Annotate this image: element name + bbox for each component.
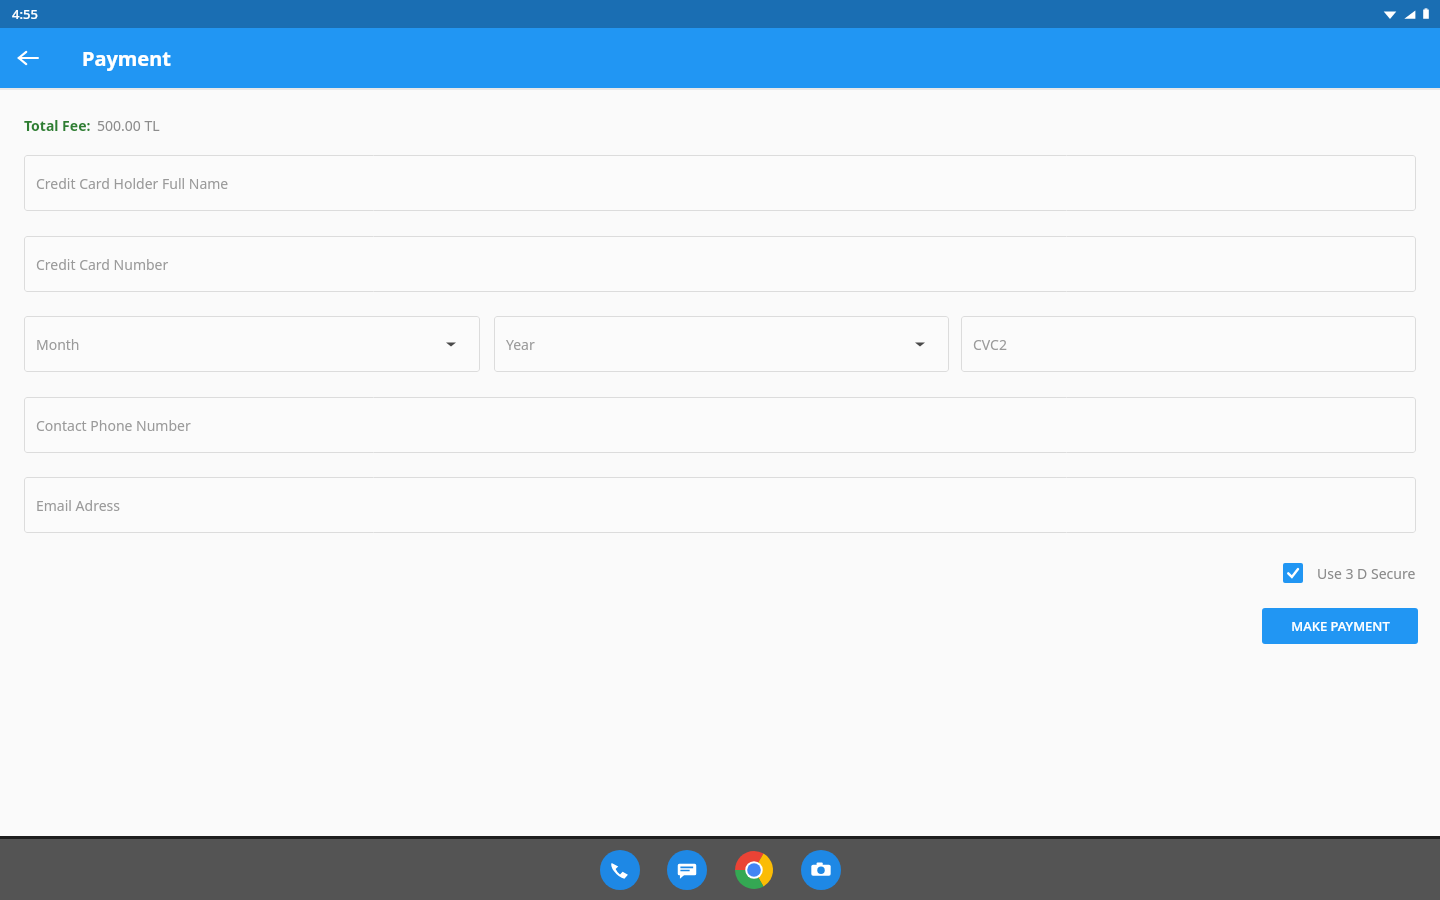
button[interactable]: Credit Card Holder Full Name <box>24 155 1416 211</box>
staticText: CVC2 <box>973 335 1007 354</box>
button[interactable]: Use 3 D Secure <box>1283 563 1416 583</box>
button[interactable]: Chrome <box>734 850 774 890</box>
staticText: Use 3 D Secure <box>1317 564 1416 583</box>
staticText: 500.00 TL <box>97 116 160 135</box>
button[interactable]: Phone <box>600 850 640 890</box>
staticText: Email Adress <box>36 496 120 515</box>
staticText: Payment <box>82 45 171 72</box>
staticText: Contact Phone Number <box>36 416 191 435</box>
button[interactable]: Contact Phone Number <box>24 397 1416 453</box>
button[interactable]: Messages <box>667 850 707 890</box>
button[interactable]: Email Adress <box>24 477 1416 533</box>
staticText: Year <box>506 335 535 354</box>
button[interactable]: Month <box>24 316 480 372</box>
staticText: Credit Card Number <box>36 255 169 274</box>
staticText: 4:55 <box>12 5 38 23</box>
button[interactable]: MAKE PAYMENT <box>1262 608 1418 644</box>
button[interactable]: CVC2 <box>961 316 1416 372</box>
staticText: Month <box>36 335 80 354</box>
staticText: Credit Card Holder Full Name <box>36 174 229 193</box>
button[interactable]: Back <box>0 30 56 86</box>
staticText: Total Fee: <box>24 116 91 135</box>
button[interactable]: Camera <box>801 850 841 890</box>
button[interactable]: Year <box>494 316 949 372</box>
button[interactable]: Credit Card Number <box>24 236 1416 292</box>
staticText: MAKE PAYMENT <box>1291 617 1390 635</box>
